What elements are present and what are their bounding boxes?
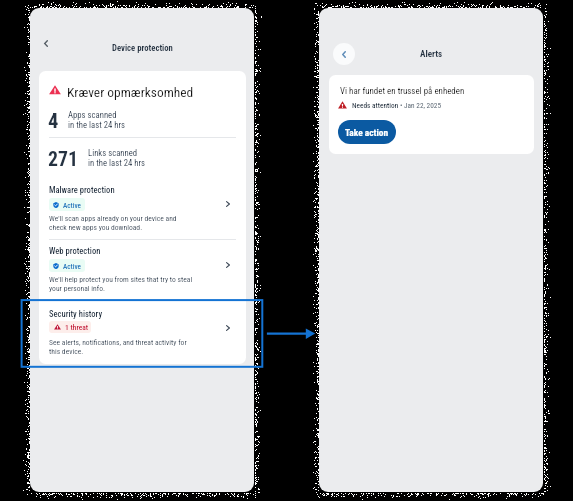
staticText: Malware protection xyxy=(49,185,115,195)
staticText: Active xyxy=(63,201,81,209)
staticText: Security history xyxy=(49,309,103,319)
staticText: 4 xyxy=(48,109,59,133)
button[interactable]: Take action xyxy=(338,120,396,144)
staticText: We'll scan apps already on your device a… xyxy=(49,214,177,232)
staticText: Device protection xyxy=(112,43,173,53)
staticText: Kræver opmærksomhed xyxy=(67,85,194,101)
staticText: Alerts xyxy=(420,49,443,60)
button[interactable]: Back xyxy=(333,43,355,65)
staticText: Links scanned in the last 24 hrs xyxy=(88,148,146,169)
button[interactable]: Security history xyxy=(39,309,246,360)
staticText: See alerts, notifications, and threat ac… xyxy=(49,338,187,356)
staticText: Vi har fundet en trussel på enheden xyxy=(340,86,465,96)
button[interactable]: Web protection xyxy=(39,246,246,297)
button[interactable]: Back xyxy=(38,36,53,51)
staticText: 271 xyxy=(48,148,79,171)
staticText: Web protection xyxy=(49,246,101,256)
staticText: Needs attention • Jan 22, 2025 xyxy=(352,101,442,110)
staticText: Apps scanned in the last 24 hrs xyxy=(68,110,126,131)
button[interactable]: Malware protection xyxy=(39,185,246,236)
staticText: 1 threat xyxy=(65,323,89,332)
staticText: We'll help protect you from sites that t… xyxy=(49,275,193,293)
staticText: Active xyxy=(63,262,81,270)
staticText: Take action xyxy=(345,127,389,138)
